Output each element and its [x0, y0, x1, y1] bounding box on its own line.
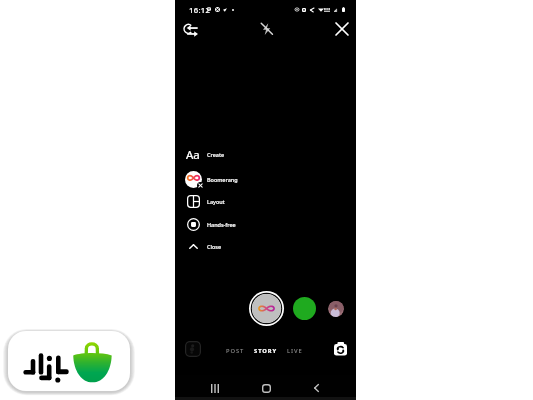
button[interactable]: Aa: [175, 143, 356, 165]
button[interactable]: Close camera: [331, 19, 353, 39]
button[interactable]: Layout: [175, 190, 356, 212]
staticText: Layout: [207, 198, 225, 205]
button[interactable]: Boomerang: [175, 168, 356, 190]
button[interactable]: Close: [175, 235, 356, 257]
button[interactable]: Flip camera: [330, 339, 350, 359]
button[interactable]: STORY: [253, 344, 279, 358]
button[interactable]: Open gallery: [185, 341, 201, 357]
button[interactable]: Capture boomerang: [249, 291, 284, 326]
button[interactable]: Effects: [293, 297, 316, 320]
button[interactable]: Recent apps: [205, 378, 225, 398]
button[interactable]: Hands-free: [175, 213, 356, 235]
staticText: Aa: [186, 147, 200, 161]
staticText: Boomerang: [207, 176, 238, 183]
button[interactable]: LIVE: [286, 344, 304, 358]
button[interactable]: Back: [306, 378, 326, 398]
staticText: STORY: [254, 347, 278, 355]
button[interactable]: Your story: [328, 301, 344, 317]
button[interactable]: Flash off: [255, 18, 277, 40]
staticText: POST: [226, 347, 245, 355]
staticText: Close: [207, 243, 222, 250]
button[interactable]: POST: [225, 344, 246, 358]
button[interactable]: Switch camera: [179, 19, 203, 41]
staticText: Hands-free: [207, 221, 236, 228]
button[interactable]: Bazaar: [8, 331, 130, 391]
button[interactable]: Home: [256, 378, 276, 398]
staticText: 16:12: [189, 5, 211, 15]
staticText: Create: [207, 151, 225, 158]
staticText: LIVE: [287, 347, 303, 355]
